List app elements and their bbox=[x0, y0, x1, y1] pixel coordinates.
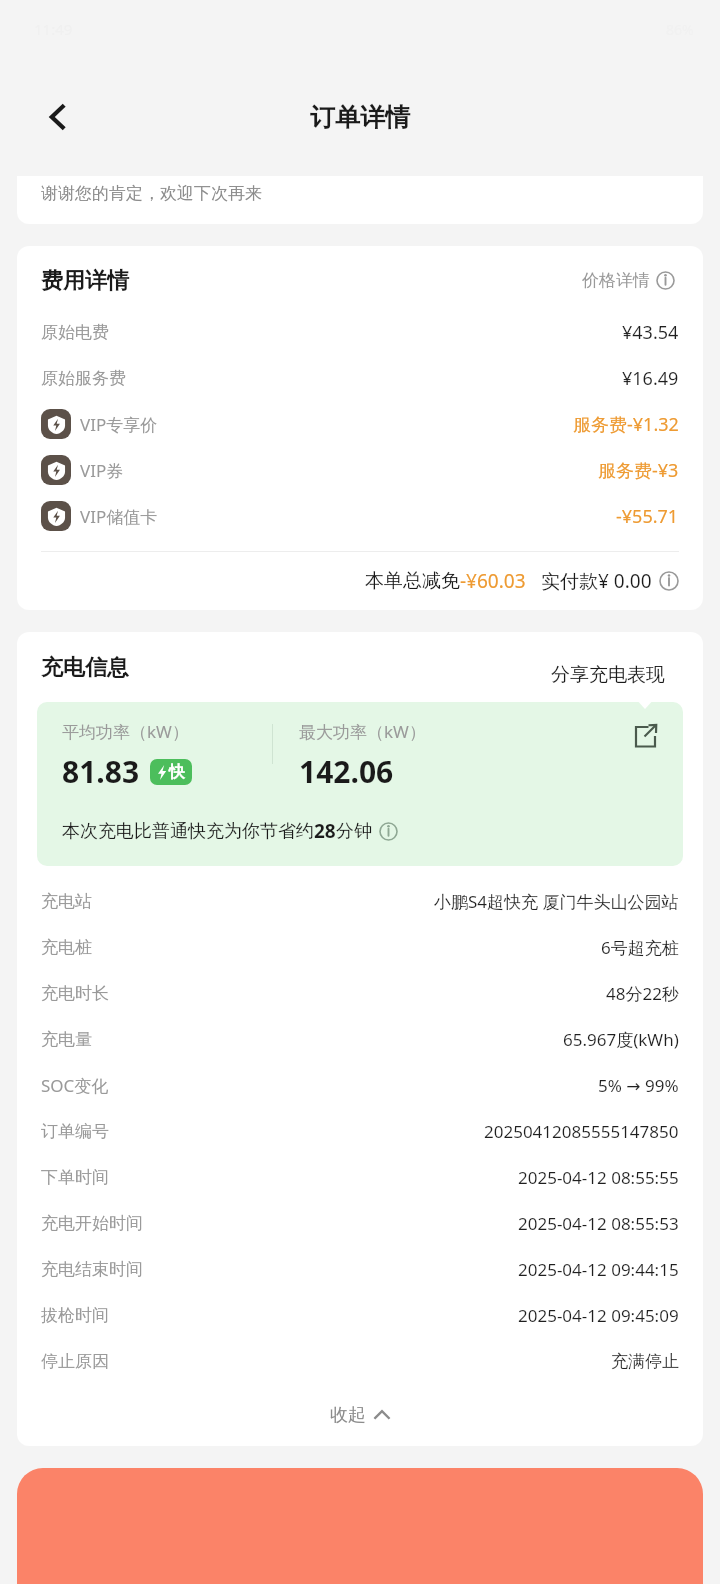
staticText: 服务费-¥3 bbox=[598, 458, 679, 483]
staticText: 20250412085555147850 bbox=[484, 1120, 679, 1143]
staticText: -¥55.71 bbox=[616, 504, 679, 529]
staticText: 最大功率（kW） bbox=[299, 720, 426, 743]
staticText: 分享充电表现 bbox=[551, 663, 665, 687]
staticText: VIP储值卡 bbox=[80, 505, 158, 528]
staticText: 快 bbox=[169, 762, 185, 782]
staticText: 65.967度(kWh) bbox=[563, 1028, 679, 1051]
staticText: 5% → 99% bbox=[598, 1074, 679, 1097]
staticText: 142.06 bbox=[299, 751, 394, 792]
staticText: 实付款¥ 0.00 bbox=[541, 568, 652, 594]
staticText: 2025-04-12 08:55:55 bbox=[518, 1166, 679, 1189]
staticText: 停止原因 bbox=[41, 1351, 109, 1372]
staticText: 谢谢您的肯定，欢迎下次再来 bbox=[41, 183, 262, 204]
staticText: 充满停止 bbox=[611, 1351, 679, 1372]
staticText: VIP专享价 bbox=[80, 413, 158, 436]
staticText: 2025-04-12 08:55:53 bbox=[518, 1212, 679, 1235]
button[interactable]: 分享充电表现 bbox=[535, 652, 681, 698]
staticText: 充电时长 bbox=[41, 983, 109, 1004]
staticText: 下单时间 bbox=[41, 1167, 109, 1188]
staticText: 服务费-¥1.32 bbox=[573, 412, 679, 437]
staticText: 2025-04-12 09:45:09 bbox=[518, 1304, 679, 1327]
staticText: 原始服务费 bbox=[41, 368, 126, 389]
staticText: 充电桩 bbox=[41, 937, 92, 958]
staticText: 小鹏S4超快充 厦门牛头山公园站 bbox=[434, 890, 679, 913]
staticText: 平均功率（kW） bbox=[62, 720, 189, 743]
button[interactable]: Back bbox=[30, 89, 86, 145]
staticText: 48分22秒 bbox=[606, 982, 679, 1005]
staticText: 本单总减免 bbox=[365, 569, 460, 593]
staticText: 订单详情 bbox=[310, 102, 410, 133]
staticText: 6号超充桩 bbox=[601, 936, 679, 959]
staticText: 原始电费 bbox=[41, 322, 109, 343]
staticText: 本次充电比普通快充为你节省约 bbox=[62, 820, 314, 843]
staticText: 28 bbox=[314, 818, 336, 844]
staticText: -¥60.03 bbox=[460, 568, 526, 594]
staticText: 费用详情 bbox=[41, 267, 129, 295]
staticText: 充电站 bbox=[41, 891, 92, 912]
button[interactable]: 谢谢您的肯定，欢迎下次再来 bbox=[17, 176, 703, 224]
staticText: 2025-04-12 09:44:15 bbox=[518, 1258, 679, 1281]
staticText: 订单编号 bbox=[41, 1121, 109, 1142]
staticText: 81.83 bbox=[62, 751, 140, 792]
staticText: 充电结束时间 bbox=[41, 1259, 143, 1280]
staticText: ¥16.49 bbox=[622, 366, 679, 391]
button[interactable]: 收起 bbox=[17, 1384, 703, 1446]
staticText: 充电开始时间 bbox=[41, 1213, 143, 1234]
staticText: 充电量 bbox=[41, 1029, 92, 1050]
staticText: ¥43.54 bbox=[622, 320, 679, 345]
button[interactable] bbox=[17, 1468, 703, 1584]
staticText: 拔枪时间 bbox=[41, 1305, 109, 1326]
staticText: 收起 bbox=[330, 1404, 366, 1427]
staticText: 充电信息 bbox=[41, 654, 129, 682]
button[interactable]: 价格详情 bbox=[578, 266, 679, 295]
staticText: SOC变化 bbox=[41, 1074, 109, 1097]
button[interactable]: Share bbox=[625, 716, 665, 756]
staticText: 分钟 bbox=[336, 820, 372, 843]
staticText: VIP券 bbox=[80, 459, 124, 482]
staticText: 价格详情 bbox=[582, 270, 650, 291]
